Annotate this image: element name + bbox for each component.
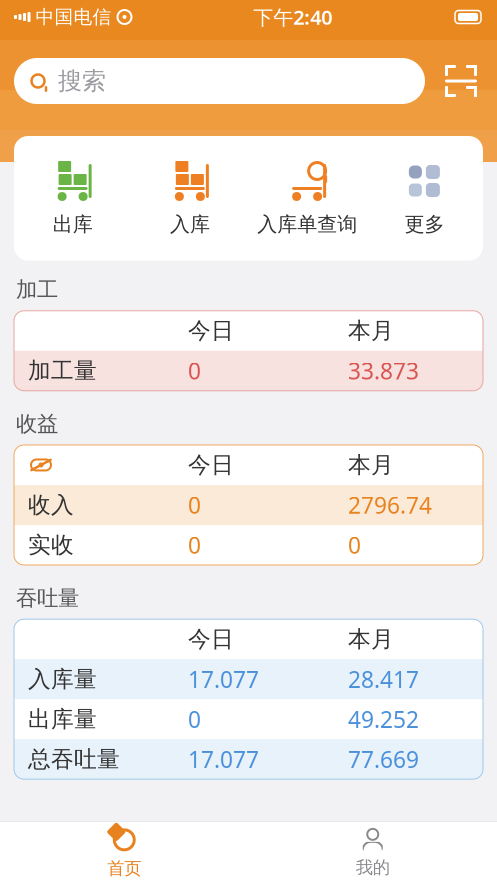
staticText: 17.077 xyxy=(188,664,259,694)
button[interactable]: 扫描 xyxy=(439,58,483,104)
staticText: 入库量 xyxy=(28,665,97,693)
button[interactable]: 搜索 xyxy=(14,58,425,104)
button[interactable]: 入库 xyxy=(131,156,248,241)
staticText: 总吞吐量 xyxy=(28,745,120,773)
staticText: 本月 xyxy=(348,625,394,653)
staticText: 今日 xyxy=(188,625,234,653)
staticText: 17.077 xyxy=(188,744,259,774)
staticText: 0 xyxy=(188,704,201,734)
staticText: 下午2:40 xyxy=(253,4,332,30)
staticText: 33.873 xyxy=(348,356,419,386)
staticText: 出库 xyxy=(53,212,93,237)
staticText: 出库量 xyxy=(28,705,97,733)
button[interactable]: 我的 xyxy=(248,821,497,883)
staticText: 中国电信 xyxy=(35,5,111,28)
staticText: 77.669 xyxy=(348,744,419,774)
staticText: 2796.74 xyxy=(348,490,432,520)
staticText: 首页 xyxy=(107,858,141,879)
staticText: 28.417 xyxy=(348,664,419,694)
button[interactable]: 首页 xyxy=(0,820,248,883)
button[interactable]: 入库单查询 xyxy=(248,156,366,241)
staticText: 实收 xyxy=(28,531,74,559)
staticText: 搜索 xyxy=(58,66,106,96)
staticText: 加工量 xyxy=(28,357,97,385)
staticText: 本月 xyxy=(348,451,394,479)
staticText: 0 xyxy=(348,530,361,560)
staticText: 收益 xyxy=(16,411,58,437)
staticText: 0 xyxy=(188,490,201,520)
staticText: 0 xyxy=(188,356,201,386)
staticText: 0 xyxy=(188,530,201,560)
button[interactable]: 更多 xyxy=(366,156,483,241)
staticText: 收入 xyxy=(28,491,74,519)
staticText: 吞吐量 xyxy=(16,585,79,611)
staticText: 入库单查询 xyxy=(257,212,357,237)
staticText: 加工 xyxy=(16,277,58,303)
staticText: 49.252 xyxy=(348,704,419,734)
staticText: 我的 xyxy=(356,857,390,878)
staticText: 本月 xyxy=(348,317,394,345)
staticText: 入库 xyxy=(170,212,210,237)
staticText: 今日 xyxy=(188,451,234,479)
button[interactable]: 出库 xyxy=(14,156,131,241)
staticText: 今日 xyxy=(188,317,234,345)
staticText: 更多 xyxy=(404,212,444,237)
